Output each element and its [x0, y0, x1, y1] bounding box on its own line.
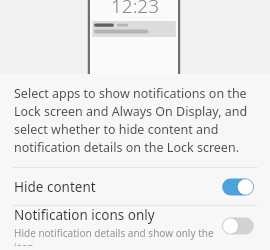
staticText: Notification icons only — [14, 206, 155, 224]
staticText: 12:23 — [111, 0, 160, 13]
button[interactable]: Notification icons only — [0, 206, 270, 246]
staticText: Hide content — [14, 178, 220, 196]
button[interactable]: Toggle off — [220, 216, 256, 236]
staticText: Select apps to show notifications on the… — [14, 85, 256, 155]
staticText: Hide notification details and show only … — [14, 226, 220, 246]
button[interactable]: Toggle on — [220, 177, 256, 197]
button[interactable]: Hide content — [0, 168, 270, 205]
